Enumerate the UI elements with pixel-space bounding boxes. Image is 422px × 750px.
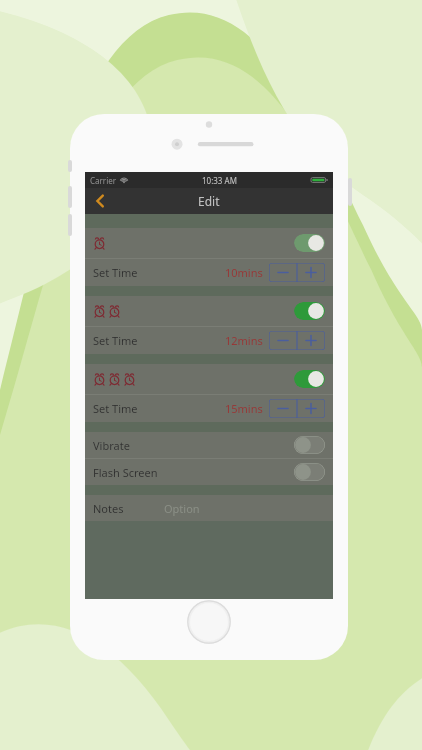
button[interactable]: Enable alarm	[85, 296, 333, 326]
staticText: Edit	[198, 193, 220, 209]
button[interactable]: Set Time	[85, 395, 333, 422]
button[interactable]: Enable alarm	[85, 364, 333, 394]
staticText: Vibrate	[93, 438, 130, 453]
button[interactable]: Set Time	[85, 327, 333, 354]
button[interactable]: Notes	[85, 495, 333, 521]
button[interactable]: Flash Screen	[85, 459, 333, 485]
button[interactable]: Enable alarm	[294, 234, 325, 252]
staticText: Set Time	[93, 401, 138, 416]
button[interactable]: Vibrate	[85, 432, 333, 458]
staticText: 10mins	[225, 265, 263, 280]
staticText: Set Time	[93, 333, 138, 348]
staticText: 12mins	[225, 333, 263, 348]
button[interactable]	[269, 263, 325, 282]
button[interactable]	[269, 399, 325, 418]
button[interactable]: Back	[85, 188, 115, 214]
staticText: Option	[164, 501, 325, 516]
button[interactable]: Enable alarm	[294, 370, 325, 388]
staticText: Carrier	[90, 175, 117, 186]
staticText: Flash Screen	[93, 465, 158, 480]
staticText: Notes	[93, 501, 124, 516]
button[interactable]: Vibrate	[294, 436, 325, 454]
button[interactable]: Set Time	[85, 259, 333, 286]
button[interactable]	[269, 331, 325, 350]
staticText: 15mins	[225, 401, 263, 416]
button[interactable]: Enable alarm	[85, 228, 333, 258]
staticText: Set Time	[93, 265, 138, 280]
button[interactable]: Flash Screen	[294, 463, 325, 481]
button[interactable]: Enable alarm	[294, 302, 325, 320]
staticText: 10:33 AM	[202, 175, 237, 186]
